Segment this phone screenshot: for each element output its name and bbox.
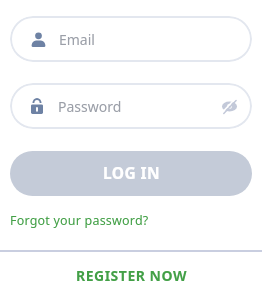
staticText: Password — [58, 97, 122, 116]
button[interactable]: Email — [10, 16, 252, 62]
button[interactable] — [217, 94, 241, 118]
button[interactable]: REGISTER NOW — [0, 266, 262, 285]
button[interactable]: Forgot your password? — [10, 212, 149, 229]
button[interactable]: Password — [10, 83, 252, 129]
staticText: REGISTER NOW — [76, 266, 187, 285]
staticText: Email — [59, 30, 95, 49]
staticText: Forgot your password? — [10, 212, 149, 229]
staticText: LOG IN — [103, 162, 160, 183]
button[interactable]: LOG IN — [10, 151, 252, 196]
